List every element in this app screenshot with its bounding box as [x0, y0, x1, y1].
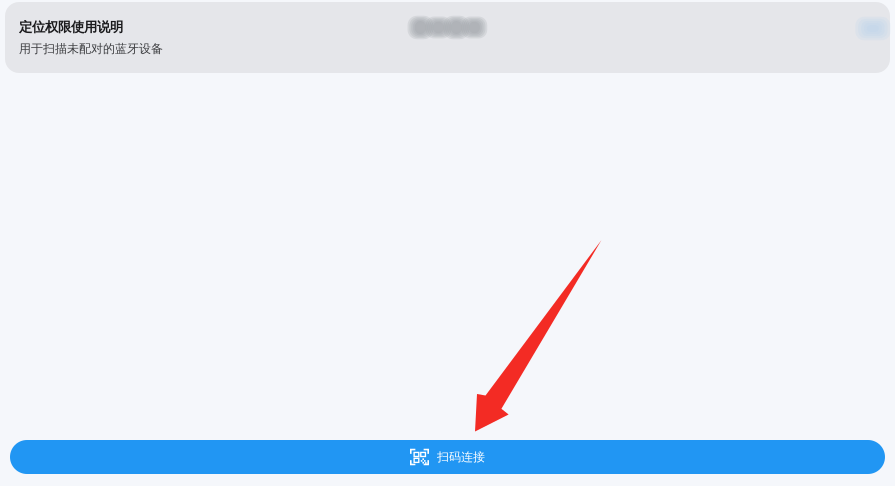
- staticText: 定位权限使用说明: [19, 19, 123, 35]
- button[interactable]: 扫码连接: [10, 440, 885, 474]
- staticText: 扫码连接: [437, 450, 485, 464]
- button[interactable]: 操作: [840, 25, 876, 50]
- staticText: 用于扫描未配对的蓝牙设备: [19, 41, 163, 56]
